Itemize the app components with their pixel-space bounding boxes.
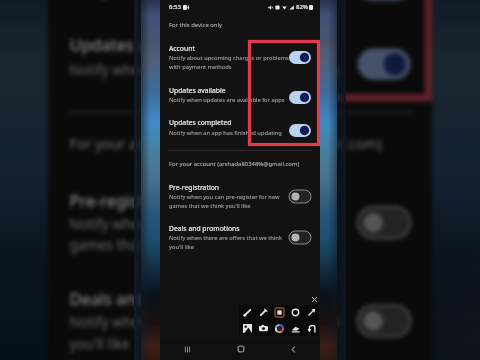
staticText: For your account (arshada80348%@gmail.co…: [70, 135, 384, 154]
button[interactable]: Toggle on: [289, 91, 311, 104]
button[interactable]: Pen: [239, 305, 255, 320]
staticText: Notify when an app has finished updating: [70, 61, 341, 80]
button[interactable]: Close: [309, 294, 319, 304]
staticText: Notify when you can pre-register for new…: [70, 214, 336, 255]
button[interactable]: [48, 173, 432, 265]
button[interactable]: Eraser: [287, 320, 303, 336]
button[interactable]: [160, 113, 320, 144]
button[interactable]: Toggle off: [358, 305, 410, 337]
button[interactable]: Marker: [255, 305, 271, 320]
button[interactable]: [48, 274, 432, 360]
staticText: Account: [169, 44, 195, 53]
staticText: Notify when updates are available for ap…: [70, 0, 348, 1]
button[interactable]: Arrow: [303, 305, 319, 320]
button[interactable]: Recent apps: [160, 338, 214, 360]
staticText: Deals and promotions: [169, 224, 240, 233]
staticText: Pre-registration: [169, 183, 219, 192]
staticText: Notify about upcoming charges or problem…: [169, 54, 289, 71]
button[interactable]: Toggle off: [289, 190, 311, 203]
button[interactable]: Undo: [303, 320, 319, 336]
staticText: 82%: [296, 3, 308, 11]
staticText: Notify when there are offers that we thi…: [169, 234, 282, 251]
staticText: For your account (arshada80348%@gmail.co…: [169, 160, 300, 168]
button[interactable]: Toggle off: [289, 231, 311, 244]
button[interactable]: [160, 80, 320, 112]
staticText: Pre-registration: [70, 190, 190, 212]
button[interactable]: Back: [267, 338, 320, 360]
staticText: Notify when there are offers that we thi…: [70, 313, 341, 353]
staticText: Updates available: [169, 86, 226, 95]
button[interactable]: Circle: [287, 305, 303, 320]
button[interactable]: Toggle on: [289, 124, 311, 137]
button[interactable]: [48, 0, 432, 20]
button[interactable]: Colour: [271, 320, 287, 336]
staticText: Updates completed: [169, 118, 232, 127]
staticText: Notify when updates are available for ap…: [169, 96, 285, 104]
button[interactable]: Crop: [239, 320, 255, 336]
button[interactable]: Toggle on: [289, 51, 311, 64]
button[interactable]: Toggle off: [358, 207, 410, 238]
staticText: Deals and promotions: [70, 289, 240, 310]
button[interactable]: [48, 22, 432, 97]
button[interactable]: Camera: [255, 320, 271, 336]
staticText: 6:53: [169, 3, 181, 11]
button[interactable]: Rectangle: [271, 305, 287, 320]
button[interactable]: Home: [214, 338, 267, 360]
button[interactable]: [160, 218, 320, 256]
button[interactable]: Toggle on: [358, 49, 410, 80]
staticText: Notify when you can pre-register for new…: [169, 193, 280, 210]
staticText: Notify when an app has finished updating: [169, 129, 282, 137]
staticText: For this device only: [169, 21, 222, 29]
button[interactable]: [160, 176, 320, 214]
staticText: Updates completed: [70, 34, 221, 56]
button[interactable]: Toggle on: [358, 0, 410, 1]
button[interactable]: [160, 38, 320, 78]
